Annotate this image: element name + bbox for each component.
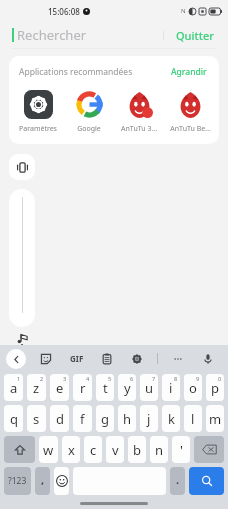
button[interactable]: f [73,405,92,432]
staticText: u [145,379,154,397]
staticText: v [112,441,119,459]
button[interactable]: x [62,436,80,463]
button[interactable]: t [96,374,114,401]
staticText: GIF [70,353,84,364]
button[interactable]: c [84,436,102,463]
staticText: 4 [86,375,90,382]
staticText: q [10,410,18,428]
button[interactable]: Period [170,467,185,495]
button[interactable]: g [96,405,114,432]
staticText: . [176,472,180,487]
button[interactable]: Back [6,349,26,369]
button[interactable]: Paramètres [13,88,63,136]
button[interactable]: Settings [127,349,147,369]
button[interactable]: i [162,374,180,401]
button[interactable]: w [39,436,58,463]
staticText: Agrandir [171,66,207,78]
button[interactable]: Media volume [12,331,32,345]
staticText: e [56,379,64,397]
staticText: n [155,441,164,459]
staticText: l [191,410,195,428]
button[interactable]: Vibrate mode [9,154,35,180]
button[interactable]: Voice input [198,349,218,369]
button[interactable]: q [4,405,23,432]
button[interactable]: d [50,405,69,432]
button[interactable]: m [206,405,224,432]
staticText: f [80,410,85,428]
staticText: b [133,441,141,459]
staticText: z [33,379,40,397]
button[interactable]: z [27,374,46,401]
staticText: , [41,472,45,487]
button[interactable]: Emoji [54,467,69,495]
button[interactable]: v [106,436,124,463]
staticText: 3 [63,375,67,382]
button[interactable]: Google [64,88,114,136]
staticText: 0 [218,375,222,382]
button[interactable]: Stickers [36,349,56,369]
button[interactable]: r [73,374,92,401]
staticText: o [189,379,197,397]
button[interactable]: h [118,405,136,432]
staticText: y [124,379,131,397]
staticText: i [169,379,173,397]
button[interactable]: GIF [67,350,87,367]
staticText: Paramètres [19,124,57,134]
staticText: r [80,379,86,397]
staticText: ' [180,441,183,459]
button[interactable]: y [118,374,136,401]
staticText: 8 [174,375,178,382]
staticText: 2 [40,375,44,382]
staticText: g [101,410,109,428]
staticText: x [68,441,75,459]
button[interactable]: Clipboard [97,349,117,369]
staticText: 1 [17,375,21,382]
staticText: Applications recommandées [19,66,133,78]
button[interactable]: l [184,405,202,432]
staticText: 15:06:08 [48,6,80,17]
staticText: 9 [196,375,200,382]
staticText: Rechercher [17,26,87,44]
button[interactable]: j [140,405,158,432]
button[interactable]: More options [168,349,188,369]
button[interactable]: Comma [35,467,50,495]
button[interactable]: b [128,436,146,463]
button[interactable]: AnTuTu Be… [165,88,215,136]
staticText: AnTuTu 3… [121,124,157,134]
staticText: p [211,379,219,397]
button[interactable]: a [4,374,23,401]
button[interactable]: Volume slider [9,189,35,327]
staticText: N [181,7,186,15]
staticText: AnTuTu Be… [170,124,211,134]
button[interactable]: n [150,436,168,463]
staticText: w [43,441,54,459]
staticText: m [209,410,222,428]
staticText: t [103,379,108,397]
button[interactable]: Backspace [194,436,224,463]
button[interactable]: AnTuTu 3… [114,88,164,136]
staticText: c [90,441,97,459]
button[interactable]: Quitter [174,26,216,45]
staticText: Google [77,124,101,134]
button[interactable]: Agrandir [169,64,209,80]
staticText: k [168,410,175,428]
button[interactable]: s [27,405,46,432]
button[interactable]: o [184,374,202,401]
button[interactable]: ' [172,436,190,463]
staticText: a [10,379,18,397]
button[interactable]: p [206,374,224,401]
staticText: s [33,410,40,428]
button[interactable]: u [140,374,158,401]
staticText: ?123 [8,475,27,487]
button[interactable]: ?123 [4,467,31,495]
staticText: h [123,410,132,428]
staticText: d [56,410,64,428]
button[interactable]: Shift [4,436,35,463]
button[interactable]: e [50,374,69,401]
staticText: 5 [108,375,112,382]
button[interactable]: k [162,405,180,432]
button[interactable]: Search [189,467,224,495]
staticText: j [147,410,151,428]
staticText: 6 [130,375,134,382]
